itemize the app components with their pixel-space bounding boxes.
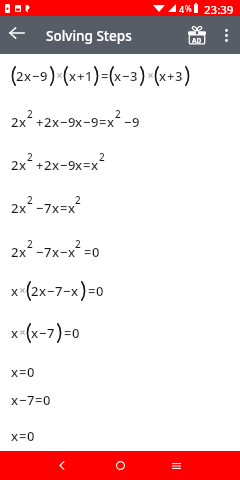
staticText: 2 xyxy=(11,243,19,261)
staticText: x xyxy=(52,243,60,261)
staticText: % xyxy=(185,3,192,14)
staticText: = xyxy=(60,199,68,217)
staticText: 9 xyxy=(132,113,140,131)
staticText: − xyxy=(60,113,68,131)
staticText: 9 xyxy=(68,113,76,131)
staticText: 2 xyxy=(115,107,121,121)
staticText: + xyxy=(167,67,175,85)
staticText: 2 xyxy=(44,156,52,174)
staticText: 2 xyxy=(75,237,81,251)
staticText: x xyxy=(52,113,60,131)
staticText: x xyxy=(11,363,19,381)
staticText: = xyxy=(64,324,72,342)
button[interactable]: Home xyxy=(100,451,140,480)
staticText: 2 xyxy=(16,67,24,85)
staticText: x xyxy=(31,324,39,342)
staticText: x xyxy=(52,156,60,174)
staticText: x xyxy=(75,156,83,174)
staticText: 2 xyxy=(11,113,19,131)
staticText: 3 xyxy=(175,67,183,85)
staticText: = xyxy=(35,391,43,409)
staticText: 2 xyxy=(27,107,33,121)
staticText: 7 xyxy=(27,391,35,409)
staticText: 7 xyxy=(44,243,52,261)
button[interactable]: Navigate up xyxy=(0,16,34,50)
staticText: 1 xyxy=(85,67,93,85)
staticText: − xyxy=(60,243,68,261)
staticText: x xyxy=(91,156,99,174)
staticText: 0 xyxy=(72,324,80,342)
staticText: − xyxy=(83,113,91,131)
staticText: − xyxy=(122,67,130,85)
staticText: x xyxy=(159,67,167,85)
staticText: − xyxy=(36,199,44,217)
staticText: 2 xyxy=(75,193,81,207)
staticText: 7 xyxy=(47,324,55,342)
staticText: 9 xyxy=(40,67,48,85)
staticText: − xyxy=(19,391,27,409)
staticText: x xyxy=(52,199,60,217)
staticText: x xyxy=(68,199,76,217)
staticText: 9 xyxy=(68,156,76,174)
staticText: 0 xyxy=(96,282,104,300)
staticText: = xyxy=(99,113,107,131)
staticText: x xyxy=(39,282,47,300)
staticText: 7 xyxy=(55,282,63,300)
staticText: x xyxy=(19,113,27,131)
staticText: 2 xyxy=(44,113,52,131)
staticText: 2 xyxy=(11,156,19,174)
staticText: = xyxy=(88,282,96,300)
staticText: = xyxy=(19,427,27,445)
staticText: x xyxy=(19,156,27,174)
staticText: x xyxy=(19,199,27,217)
staticText: = xyxy=(19,363,27,381)
staticText: − xyxy=(32,67,40,85)
staticText: 2 xyxy=(27,150,33,164)
staticText: = xyxy=(101,67,109,85)
staticText: 2 xyxy=(27,237,33,251)
staticText: x xyxy=(75,113,83,131)
staticText: x xyxy=(107,113,115,131)
staticText: x xyxy=(24,67,32,85)
staticText: + xyxy=(36,156,44,174)
staticText: − xyxy=(124,113,132,131)
staticText: 7 xyxy=(44,199,52,217)
staticText: 0 xyxy=(27,427,35,445)
staticText: x xyxy=(11,427,19,445)
staticText: 23:39 xyxy=(204,2,234,18)
staticText: 9 xyxy=(91,113,99,131)
staticText: − xyxy=(60,156,68,174)
staticText: x xyxy=(11,391,19,409)
staticText: 4 xyxy=(179,3,185,15)
staticText: 0 xyxy=(27,363,35,381)
button[interactable]: Recent apps xyxy=(156,451,196,480)
staticText: + xyxy=(77,67,85,85)
staticText: − xyxy=(39,324,47,342)
staticText: x xyxy=(114,67,122,85)
staticText: 2 xyxy=(31,282,39,300)
staticText: 3 xyxy=(130,67,138,85)
staticText: x xyxy=(11,324,19,342)
staticText: 2 xyxy=(99,150,105,164)
staticText: AD xyxy=(192,36,202,45)
staticText: = xyxy=(83,156,91,174)
staticText: 2 xyxy=(27,193,33,207)
staticText: x xyxy=(71,282,79,300)
staticText: 0 xyxy=(43,391,51,409)
button[interactable]: More options xyxy=(212,16,240,54)
button[interactable]: Back xyxy=(42,451,82,480)
staticText: x xyxy=(69,67,77,85)
staticText: = xyxy=(84,243,92,261)
staticText: Solving Steps xyxy=(46,27,132,45)
staticText: x xyxy=(11,282,19,300)
staticText: x xyxy=(19,243,27,261)
staticText: 0 xyxy=(92,243,100,261)
staticText: − xyxy=(47,282,55,300)
staticText: − xyxy=(36,243,44,261)
button[interactable]: Watch ad for rewards xyxy=(182,16,212,54)
staticText: − xyxy=(63,282,71,300)
staticText: + xyxy=(36,113,44,131)
staticText: x xyxy=(68,243,76,261)
staticText: 2 xyxy=(11,199,19,217)
